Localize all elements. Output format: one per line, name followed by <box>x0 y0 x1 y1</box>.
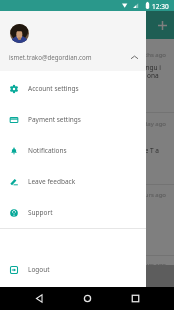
staticText: Payment settings <box>28 115 81 124</box>
staticText: 12:30 <box>152 2 169 11</box>
button[interactable]: Notifications <box>0 135 146 166</box>
staticText: Support <box>28 208 53 217</box>
staticText: 2 months ago <box>8 51 166 59</box>
button[interactable]: Back <box>25 287 53 310</box>
button[interactable]: Account settings <box>0 73 146 104</box>
button[interactable]: Leave feedback <box>0 166 146 197</box>
button[interactable]: Collapse account list <box>127 50 141 64</box>
staticText: Account settings <box>28 84 79 93</box>
staticText: a day ago <box>8 120 166 128</box>
staticText: Jedni prema drugima treba da postupaju j… <box>8 146 160 155</box>
staticText: Notifications <box>28 146 67 155</box>
button[interactable]: Payment settings <box>0 104 146 135</box>
staticText: Logout <box>28 265 50 274</box>
staticText: ismet.trako@degordian.com <box>9 53 92 61</box>
staticText: Svi ljudi se radjaju slobodni jezik koji… <box>8 63 161 80</box>
button[interactable]: Home <box>73 287 101 310</box>
staticText: Svakome pripadaju sva prava i slobo <box>8 228 119 237</box>
staticText: 3 hours ago <box>8 191 166 199</box>
button[interactable]: Support <box>0 197 146 228</box>
button[interactable]: Logout <box>0 254 146 285</box>
button[interactable]: Recents <box>121 287 149 310</box>
staticText: Leave feedback <box>28 177 76 186</box>
staticText: 5 hours ago <box>8 261 166 265</box>
button[interactable]: Add <box>154 17 170 33</box>
